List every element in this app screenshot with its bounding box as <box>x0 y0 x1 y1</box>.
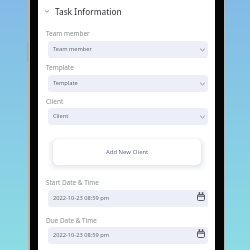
staticText: Due Date & Time <box>46 216 97 225</box>
staticText: Team member <box>46 29 90 38</box>
button[interactable]: 2022-10-23 08:59 pm <box>48 227 208 244</box>
button[interactable]: Add New Client <box>53 139 201 165</box>
staticText: Template <box>53 79 78 87</box>
staticText: 2022-10-23 08:59 pm <box>53 231 109 239</box>
staticText: Add New Client <box>106 148 149 156</box>
button[interactable]: Team member <box>48 41 208 58</box>
staticText: Client <box>46 97 64 106</box>
other: Expand <box>200 48 205 52</box>
button[interactable]: Task Information <box>44 5 122 18</box>
staticText: Template <box>46 63 74 72</box>
button[interactable]: Template <box>48 75 208 92</box>
button[interactable]: 2022-10-23 08:59 pm <box>48 190 208 207</box>
other: Expand <box>200 115 205 119</box>
other: Pick date <box>197 229 205 238</box>
staticText: Team member <box>53 45 92 53</box>
other: Expand <box>200 82 205 86</box>
staticText: Client <box>53 112 69 120</box>
staticText: Start Date & Time <box>46 178 99 187</box>
staticText: 2022-10-23 08:59 pm <box>53 194 109 202</box>
button[interactable]: Client <box>48 108 208 125</box>
staticText: Task Information <box>55 6 122 17</box>
other: Pick date <box>197 192 205 201</box>
